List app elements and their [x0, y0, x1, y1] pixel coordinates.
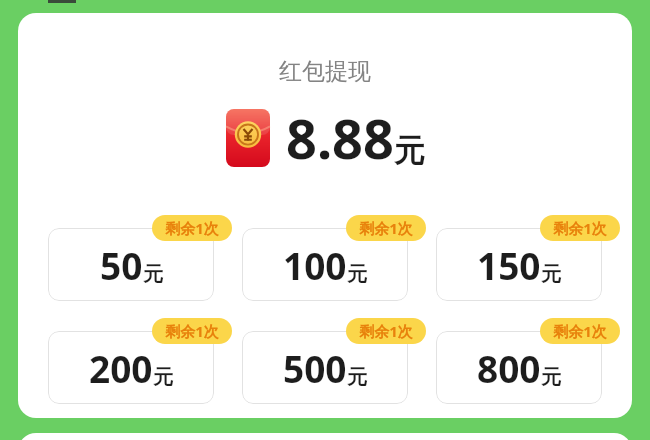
staticText: 800 [477, 343, 541, 393]
staticText: 元 [541, 365, 561, 390]
staticText: 8.88 [286, 101, 394, 175]
staticText: 元 [394, 131, 425, 170]
staticText: 100 [283, 240, 347, 290]
button[interactable]: 150 [436, 228, 602, 301]
button[interactable]: 50 [48, 228, 214, 301]
button[interactable]: 500 [242, 331, 408, 404]
staticText: 元 [347, 262, 367, 287]
button[interactable]: 800 [436, 331, 602, 404]
staticText: 元 [153, 365, 173, 390]
button[interactable]: 100 [242, 228, 408, 301]
staticText: 剩余1次 [165, 321, 219, 341]
staticText: 元 [347, 365, 367, 390]
staticText: 剩余1次 [553, 218, 607, 238]
staticText: 剩余1次 [359, 321, 413, 341]
staticText: 红包提现 [279, 57, 371, 86]
other: Red packet [226, 109, 270, 167]
button[interactable]: 200 [48, 331, 214, 404]
staticText: 50 [100, 240, 143, 290]
staticText: 500 [283, 343, 347, 393]
staticText: 150 [477, 240, 541, 290]
staticText: 元 [143, 262, 163, 287]
staticText: 剩余1次 [165, 218, 219, 238]
staticText: 200 [89, 343, 153, 393]
staticText: 剩余1次 [359, 218, 413, 238]
staticText: 剩余1次 [553, 321, 607, 341]
staticText: 元 [541, 262, 561, 287]
